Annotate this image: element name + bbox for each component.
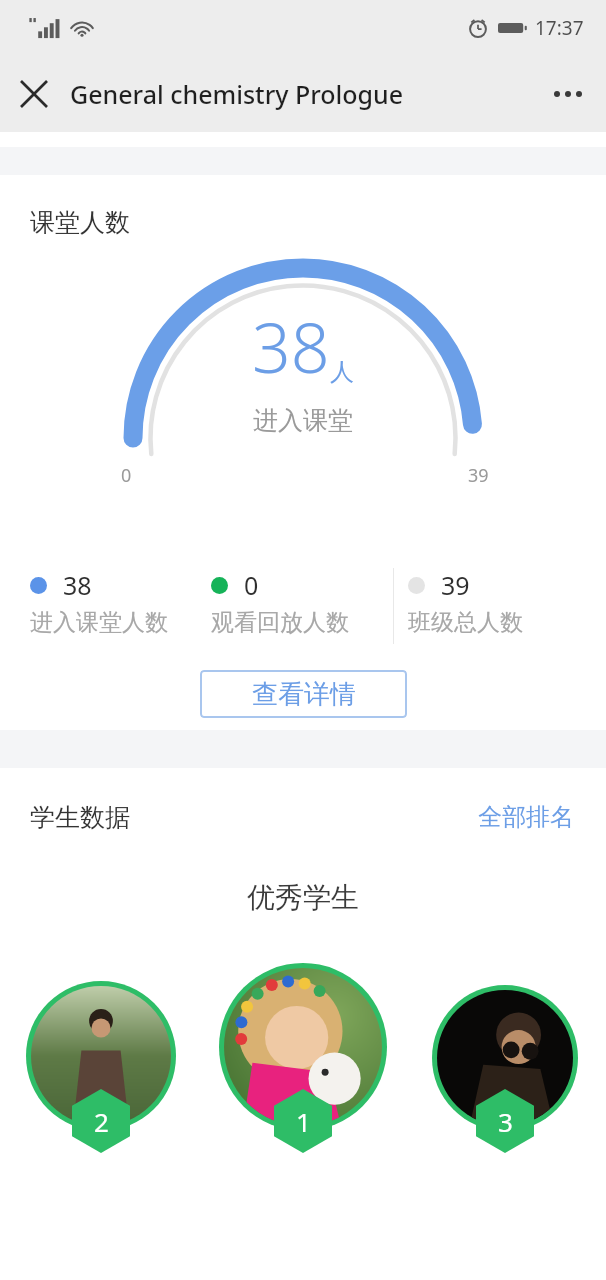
staticText: General chemistry Prologue — [70, 77, 404, 111]
staticText: 39 — [468, 463, 489, 488]
staticText: 查看详情 — [252, 678, 356, 711]
staticText: 0 — [121, 463, 132, 488]
staticText: 38 — [252, 300, 330, 393]
button[interactable]: More options — [540, 66, 596, 122]
button[interactable]: Student rank 1 — [219, 963, 387, 1153]
button[interactable]: Student rank 3 — [432, 985, 578, 1153]
staticText: 学生数据 — [30, 802, 130, 833]
staticText: 进入课堂 — [253, 405, 353, 436]
staticText: 3 — [498, 1104, 513, 1139]
button[interactable]: 查看详情 — [200, 670, 407, 718]
staticText: 优秀学生 — [247, 880, 359, 915]
button[interactable]: Close — [8, 68, 60, 120]
staticText: 人 — [330, 357, 354, 387]
staticText: 17:37 — [535, 15, 584, 41]
staticText: 1 — [296, 1104, 311, 1139]
button[interactable]: Student rank 2 — [26, 981, 176, 1153]
staticText: 0 — [244, 568, 259, 602]
button[interactable]: 全部排名 — [474, 798, 578, 836]
staticText: 进入课堂人数 — [30, 608, 168, 637]
staticText: 课堂人数 — [30, 207, 130, 238]
staticText: 2 — [94, 1104, 109, 1139]
staticText: 38 — [63, 568, 92, 602]
staticText: 班级总人数 — [408, 608, 523, 637]
staticText: 全部排名 — [478, 802, 574, 832]
staticText: 观看回放人数 — [211, 608, 349, 637]
staticText: 39 — [441, 568, 470, 602]
